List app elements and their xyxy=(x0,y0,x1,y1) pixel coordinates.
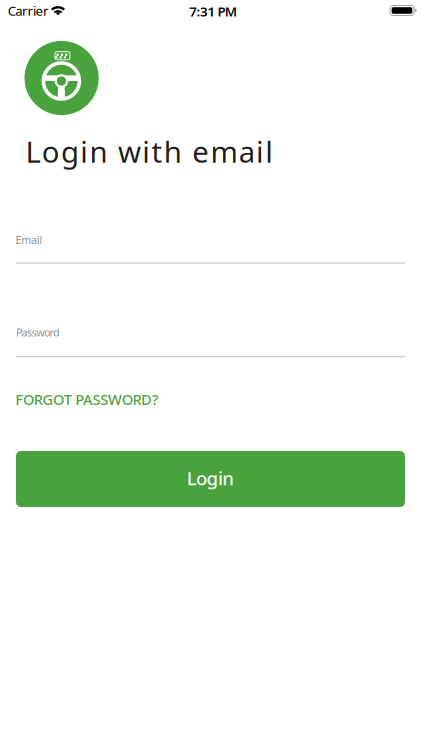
button[interactable]: Login xyxy=(16,451,405,507)
button[interactable]: FORGOT PASSWORD? xyxy=(15,390,405,409)
button[interactable]: Email xyxy=(0,225,422,269)
staticText: FORGOT PASSWORD? xyxy=(15,390,159,409)
staticText: Email xyxy=(16,233,42,247)
staticText: Carrier xyxy=(8,2,49,19)
staticText: 7:31 PM xyxy=(189,2,237,20)
staticText: Login xyxy=(187,466,234,490)
staticText: Password xyxy=(16,325,60,339)
staticText: Login with email xyxy=(25,132,273,171)
button[interactable]: Password xyxy=(0,318,422,362)
